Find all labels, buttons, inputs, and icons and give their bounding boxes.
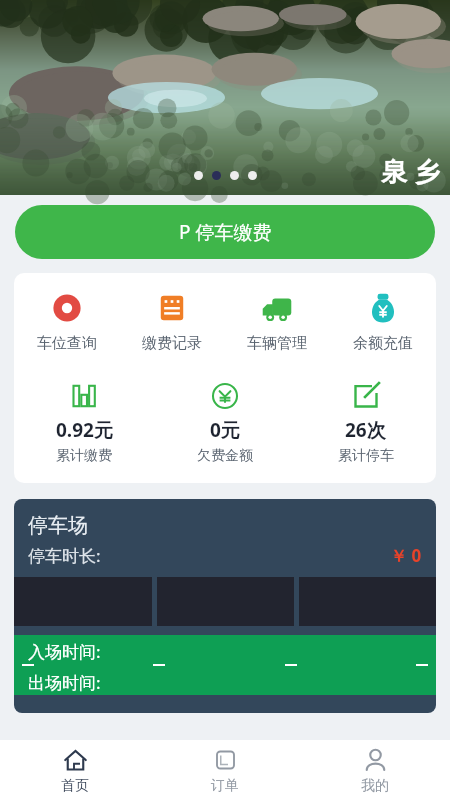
staticText: 停车时长: xyxy=(28,544,101,567)
staticText: 订单 xyxy=(211,777,239,795)
staticText: 0.92元 xyxy=(56,417,113,443)
button[interactable]: 余额充值 xyxy=(330,289,436,355)
button[interactable]: 0元 xyxy=(154,381,295,465)
button[interactable]: Page 1 xyxy=(194,171,203,180)
staticText: 泉 乡 xyxy=(381,153,440,189)
button[interactable]: 车位查询 xyxy=(14,289,119,355)
button[interactable]: 26次 xyxy=(295,381,436,465)
staticText: ￥ 0 xyxy=(390,544,422,567)
staticText: 累计缴费 xyxy=(56,447,112,465)
button[interactable]: 我的 xyxy=(300,740,450,800)
staticText: 0元 xyxy=(210,417,240,443)
staticText: 首页 xyxy=(61,777,89,795)
button[interactable]: Page 2 xyxy=(212,171,221,180)
staticText: 停车场 xyxy=(28,513,88,538)
button[interactable]: 缴费记录 xyxy=(119,289,224,355)
staticText: 出场时间: xyxy=(28,671,101,694)
staticText: 我的 xyxy=(361,777,389,795)
button[interactable]: 停车场 xyxy=(14,499,436,713)
staticText: 26次 xyxy=(345,417,386,443)
staticText: 累计停车 xyxy=(338,447,394,465)
button[interactable]: Page 3 xyxy=(230,171,239,180)
button[interactable]: 0.92元 xyxy=(14,381,154,465)
staticText: 缴费记录 xyxy=(142,334,202,353)
button[interactable]: P 停车缴费 xyxy=(15,205,435,259)
staticText: 余额充值 xyxy=(353,334,413,353)
button[interactable]: 订单 xyxy=(150,740,300,800)
staticText: 车辆管理 xyxy=(247,334,307,353)
button[interactable]: Page 4 xyxy=(248,171,257,180)
staticText: 车位查询 xyxy=(37,334,97,353)
staticText: P 停车缴费 xyxy=(179,219,272,245)
button[interactable]: 首页 xyxy=(0,740,150,800)
button[interactable]: 车辆管理 xyxy=(224,289,330,355)
staticText: 入场时间: xyxy=(28,640,101,663)
staticText: 欠费金额 xyxy=(197,447,253,465)
